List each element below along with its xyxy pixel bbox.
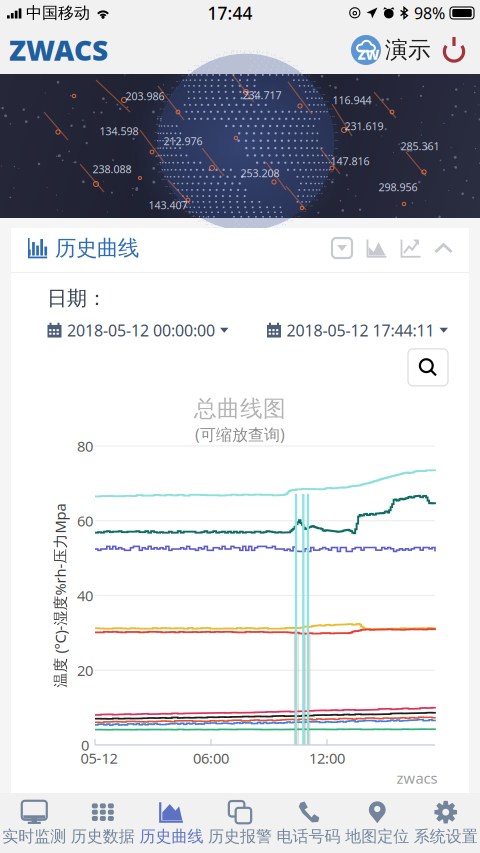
staticText: 40 (77, 586, 93, 605)
staticText: 演示 (385, 36, 431, 64)
staticText: 历史报警 (208, 827, 272, 846)
staticText: 总曲线图 (194, 395, 286, 423)
staticText: 温度 (°C)-湿度%rh-压力Mpa (0, 586, 152, 605)
button[interactable]: 电话号码 (274, 794, 343, 852)
button[interactable]: Search (408, 349, 448, 386)
staticText: 80 (77, 436, 93, 456)
staticText: 231.619 (344, 119, 383, 133)
button[interactable]: 2018-05-12 00:00:00 (47, 320, 228, 341)
button[interactable]: Area chart (366, 237, 387, 258)
staticText: 116.944 (332, 93, 371, 107)
staticText: 253.208 (240, 166, 279, 180)
button[interactable]: Power off (438, 34, 470, 66)
button[interactable]: 历史报警 (206, 794, 274, 852)
staticText: 143.407 (148, 198, 187, 212)
button[interactable]: 历史数据 (69, 794, 137, 852)
button[interactable]: Export (331, 237, 353, 259)
staticText: (可缩放查询) (195, 424, 285, 445)
staticText: 2018-05-12 00:00:00 (67, 320, 215, 341)
staticText: zwacs (396, 768, 437, 788)
staticText: 地图定位 (345, 827, 409, 846)
button[interactable]: ZW (351, 35, 431, 65)
staticText: 285.361 (400, 139, 439, 153)
staticText: 147.816 (330, 154, 369, 168)
staticText: 60 (77, 511, 93, 530)
button[interactable]: 历史曲线 (137, 794, 206, 852)
staticText: 2018-05-12 17:44:11 (286, 320, 434, 341)
staticText: 系统设置 (414, 827, 478, 846)
staticText: 06:00 (193, 748, 229, 768)
button[interactable]: Trend chart (400, 237, 421, 258)
button[interactable]: 2018-05-12 17:44:11 (266, 320, 448, 341)
staticText: 0 (81, 735, 89, 755)
staticText: 05-12 (80, 748, 117, 768)
staticText: 134.598 (99, 124, 138, 138)
staticText: 历史曲线 (55, 235, 139, 261)
staticText: 234.717 (242, 88, 281, 102)
staticText: 20 (77, 660, 93, 680)
staticText: 实时监测 (2, 827, 66, 846)
staticText: 238.088 (92, 162, 131, 176)
staticText: 历史数据 (71, 827, 135, 846)
staticText: 历史曲线 (139, 827, 203, 846)
staticText: 日期： (47, 286, 107, 311)
staticText: 203.986 (125, 89, 164, 103)
staticText: 12:00 (309, 748, 345, 768)
button[interactable]: 实时监测 (0, 794, 69, 852)
staticText: 中国移动 (26, 3, 90, 23)
staticText: 17:44 (207, 1, 252, 24)
staticText: 电话号码 (277, 827, 341, 846)
button[interactable]: Collapse (434, 241, 453, 254)
staticText: 212.976 (163, 134, 202, 148)
staticText: 98% (414, 2, 445, 24)
staticText: ZWACS (9, 31, 108, 69)
button[interactable]: 地图定位 (343, 794, 411, 852)
button[interactable]: 系统设置 (411, 794, 480, 852)
staticText: ZW (357, 46, 379, 63)
staticText: 298.956 (378, 180, 417, 194)
